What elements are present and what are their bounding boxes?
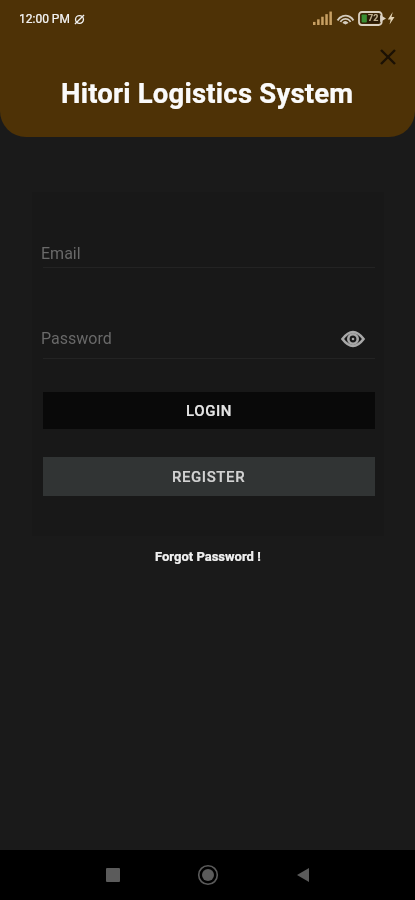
staticText: REGISTER — [172, 468, 246, 486]
staticText: 72 — [368, 13, 379, 24]
button[interactable]: Show password — [336, 322, 370, 356]
staticText: Email — [41, 244, 81, 263]
staticText: LOGIN — [186, 402, 233, 420]
staticText: Hitori Logistics System — [61, 77, 354, 109]
staticText: Password — [41, 329, 112, 348]
button[interactable]: LOGIN — [43, 392, 375, 429]
button[interactable]: Back — [279, 851, 327, 899]
staticText: 12:00 PM — [19, 12, 70, 26]
button[interactable]: Home — [184, 851, 232, 899]
button[interactable]: REGISTER — [43, 457, 375, 496]
button[interactable]: Recents — [89, 851, 137, 899]
button[interactable]: Forgot Password ! — [155, 549, 261, 564]
button[interactable]: Close — [371, 40, 405, 74]
